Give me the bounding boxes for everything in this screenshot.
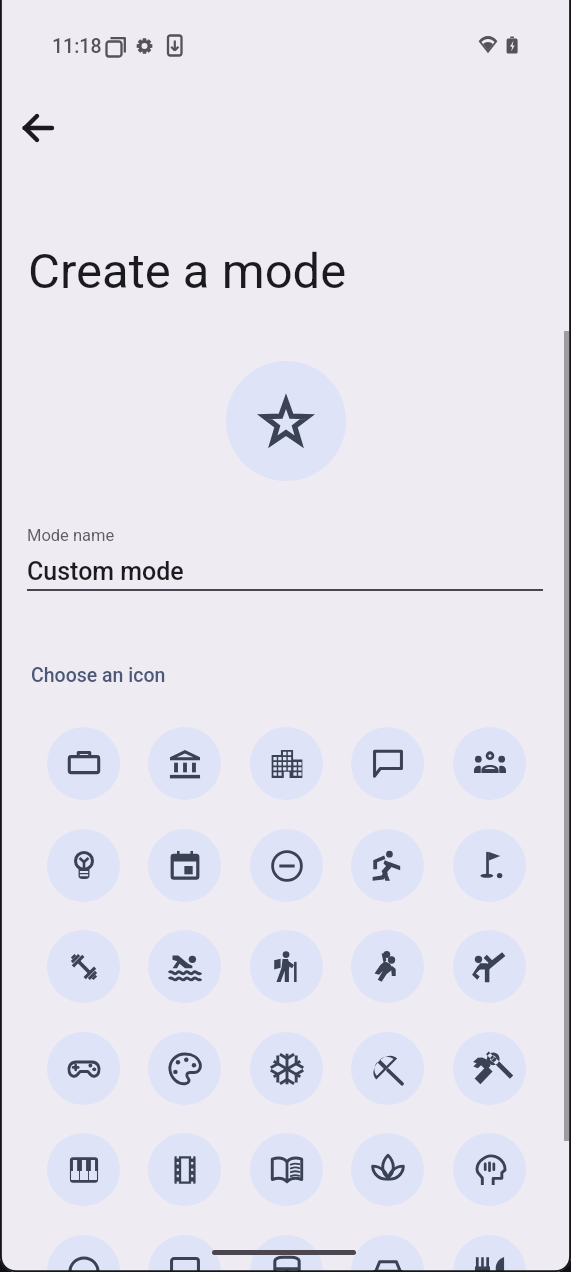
button[interactable]: Message	[351, 727, 424, 800]
button[interactable]: Music	[47, 1133, 120, 1206]
button[interactable]: Idea	[47, 829, 120, 902]
button[interactable]: Mode icon preview	[226, 361, 346, 481]
button[interactable]: Square	[148, 1235, 221, 1272]
staticText: Mode name	[27, 526, 115, 545]
button[interactable]: Sports	[351, 930, 424, 1003]
button[interactable]: Swimming	[148, 930, 221, 1003]
button[interactable]: Snowflake	[250, 1032, 323, 1105]
button[interactable]: Back	[14, 104, 62, 152]
button[interactable]: Martial arts	[453, 930, 526, 1003]
button[interactable]: Games	[47, 1032, 120, 1105]
button[interactable]: Golf	[453, 829, 526, 902]
button[interactable]: Tools	[453, 1032, 526, 1105]
button[interactable]: Office	[250, 727, 323, 800]
button[interactable]: Mindfulness	[453, 1133, 526, 1206]
staticText: Create a mode	[28, 243, 347, 300]
button[interactable]: Hiking	[250, 930, 323, 1003]
button[interactable]: Do not disturb	[250, 829, 323, 902]
button[interactable]: Transit	[250, 1235, 323, 1272]
button[interactable]: Fitness	[47, 930, 120, 1003]
button[interactable]: Choose an icon	[31, 664, 166, 687]
button[interactable]: Circle	[47, 1235, 120, 1272]
button[interactable]: Nature	[351, 1133, 424, 1206]
button[interactable]: Movies	[148, 1133, 221, 1206]
button[interactable]: Groups	[453, 727, 526, 800]
button[interactable]: Art	[148, 1032, 221, 1105]
button[interactable]: Calendar	[148, 829, 221, 902]
button[interactable]: Restaurant	[453, 1235, 526, 1272]
staticText: Custom mode	[27, 557, 184, 586]
button[interactable]: Work	[47, 727, 120, 800]
button[interactable]: Reading	[250, 1133, 323, 1206]
button[interactable]: Running	[351, 829, 424, 902]
staticText: 11:18	[52, 35, 102, 58]
button[interactable]: Beach	[351, 1032, 424, 1105]
button[interactable]: Bank	[148, 727, 221, 800]
button[interactable]: Car	[351, 1235, 424, 1272]
